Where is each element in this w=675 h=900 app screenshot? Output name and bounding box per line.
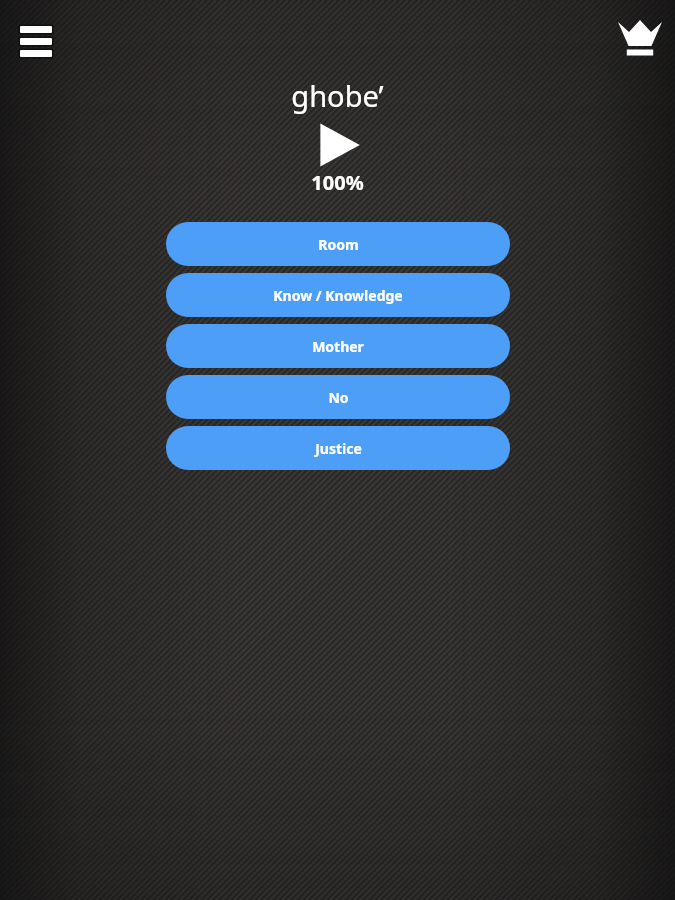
- button[interactable]: Mother: [166, 324, 510, 368]
- button[interactable]: No: [166, 375, 510, 419]
- staticText: No: [328, 388, 349, 407]
- staticText: Mother: [312, 337, 364, 356]
- staticText: 100%: [311, 169, 364, 196]
- button[interactable]: Room: [166, 222, 510, 266]
- staticText: Justice: [315, 439, 362, 458]
- staticText: Know / Knowledge: [273, 286, 403, 305]
- button[interactable]: Play pronunciation: [311, 123, 365, 167]
- button[interactable]: Premium: [613, 12, 667, 62]
- staticText: Room: [318, 235, 359, 254]
- staticText: ghobe’: [291, 76, 384, 115]
- button[interactable]: Know / Knowledge: [166, 273, 510, 317]
- button[interactable]: Justice: [166, 426, 510, 470]
- button[interactable]: Menu: [10, 14, 62, 64]
